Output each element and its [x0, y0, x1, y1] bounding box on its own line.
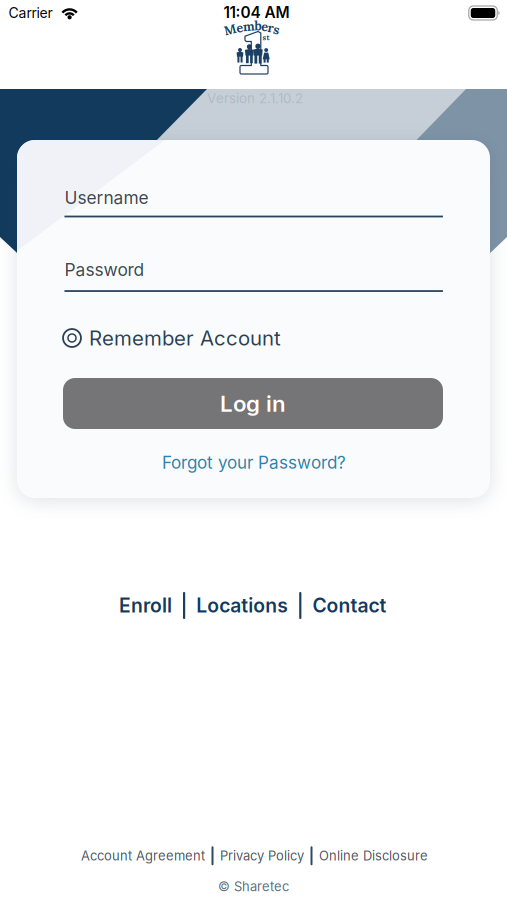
staticText: s	[274, 21, 280, 38]
button[interactable]: Enroll	[119, 594, 172, 617]
button[interactable]: Contact	[312, 594, 386, 617]
staticText: Privacy Policy	[220, 848, 304, 863]
staticText: e	[261, 18, 268, 34]
button[interactable]: Username	[64, 187, 443, 217]
staticText: st	[262, 33, 269, 42]
staticText: m	[243, 18, 255, 34]
staticText: r	[268, 19, 274, 36]
staticText: Forgot your Password?	[162, 452, 346, 472]
staticText: Locations	[196, 594, 288, 617]
staticText: © Sharetec	[218, 879, 289, 894]
staticText: Version 2.1.10.2	[207, 91, 303, 106]
staticText: e	[236, 19, 243, 36]
staticText: Account Agreement	[81, 848, 205, 863]
staticText: Enroll	[119, 594, 172, 617]
staticText: Password	[64, 259, 144, 280]
staticText: Remember Account	[89, 326, 281, 350]
button[interactable]: Log in	[63, 378, 443, 429]
button[interactable]: Locations	[196, 594, 288, 617]
button[interactable]: Privacy Policy	[220, 848, 304, 863]
button[interactable]: Online Disclosure	[319, 848, 428, 863]
staticText: Username	[64, 187, 148, 208]
button[interactable]: Forgot your Password?	[162, 452, 346, 472]
staticText: Carrier	[8, 5, 52, 21]
staticText: Contact	[312, 594, 386, 617]
staticText: M	[224, 21, 236, 38]
staticText: b	[254, 18, 261, 34]
button[interactable]: Remember Account	[63, 326, 281, 350]
staticText: 11:04 AM	[223, 3, 289, 22]
button[interactable]: Account Agreement	[81, 848, 205, 863]
staticText: Log in	[220, 390, 286, 417]
staticText: Online Disclosure	[319, 848, 428, 863]
button[interactable]: Password	[64, 259, 443, 292]
